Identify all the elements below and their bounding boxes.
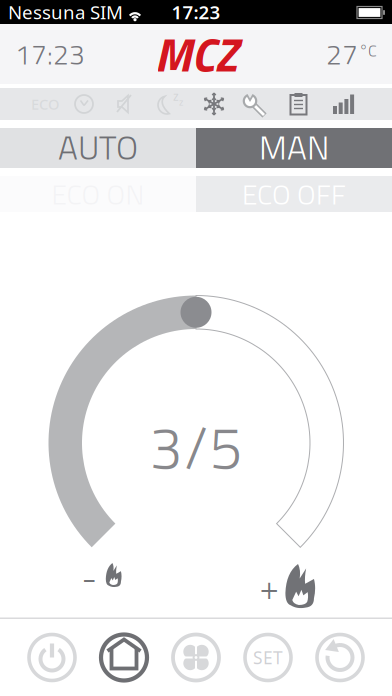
staticText: - bbox=[81, 552, 96, 604]
button[interactable]: Increase power bbox=[260, 560, 320, 610]
button[interactable]: MAN bbox=[196, 128, 392, 168]
button[interactable]: Decrease power bbox=[80, 557, 128, 597]
button[interactable]: ECO OFF bbox=[196, 176, 392, 212]
staticText: 17:23 bbox=[15, 33, 85, 75]
staticText: Nessuna SIM bbox=[8, 0, 123, 24]
staticText: 3/5 bbox=[149, 402, 242, 492]
staticText: 17:23 bbox=[171, 0, 220, 24]
staticText: ECO bbox=[31, 94, 59, 114]
staticText: MAN bbox=[259, 122, 329, 172]
staticText: AUTO bbox=[58, 122, 138, 172]
staticText: z bbox=[179, 96, 183, 108]
staticText: z bbox=[173, 88, 179, 104]
button[interactable]: AUTO bbox=[0, 128, 196, 168]
button[interactable]: Reset bbox=[315, 632, 365, 682]
button[interactable]: Home bbox=[99, 632, 149, 682]
button[interactable]: Set bbox=[243, 632, 293, 682]
button[interactable]: Power bbox=[27, 632, 77, 682]
staticText: 27 bbox=[326, 33, 358, 75]
staticText: ECO OFF bbox=[242, 173, 346, 215]
button[interactable]: Fan bbox=[171, 632, 221, 682]
staticText: SET bbox=[253, 646, 283, 669]
staticText: + bbox=[259, 561, 278, 613]
staticText: °C bbox=[359, 38, 377, 63]
staticText: MCZ bbox=[154, 18, 237, 89]
